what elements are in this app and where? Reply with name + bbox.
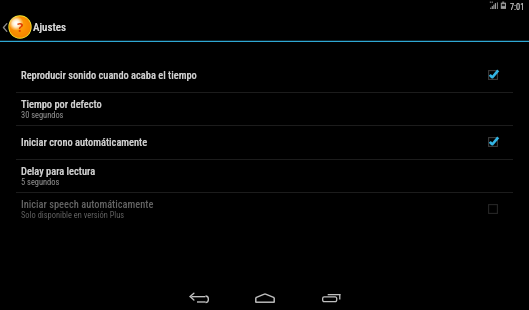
staticText: Delay para lectura: [21, 165, 96, 177]
staticText: Tiempo por defecto: [21, 98, 102, 110]
staticText: Reproducir sonido cuando acaba el tiempo: [21, 69, 197, 81]
staticText: 7:01: [510, 2, 525, 12]
staticText: Iniciar crono automáticamente: [21, 136, 148, 148]
button[interactable]: Reproducir sonido cuando acaba el tiempo: [0, 58, 529, 92]
staticText: Ajustes: [33, 21, 66, 34]
button[interactable]: Iniciar crono automáticamente: [0, 125, 529, 158]
button[interactable]: Delay para lectura: [0, 159, 529, 193]
staticText: ?: [17, 18, 24, 36]
button[interactable]: Navigate up: [0, 13, 70, 41]
button[interactable]: Tiempo por defecto: [0, 92, 529, 125]
staticText: Iniciar speech automáticamente: [21, 198, 154, 210]
staticText: Solo disponible en versión Plus: [21, 210, 125, 220]
button[interactable]: Iniciar speech automáticamente: [0, 192, 529, 226]
staticText: 30 segundos: [21, 110, 64, 120]
button[interactable]: Back: [174, 286, 222, 310]
button[interactable]: Home: [241, 286, 289, 310]
button[interactable]: Recent apps: [308, 286, 356, 310]
staticText: 5 segundos: [21, 177, 60, 187]
